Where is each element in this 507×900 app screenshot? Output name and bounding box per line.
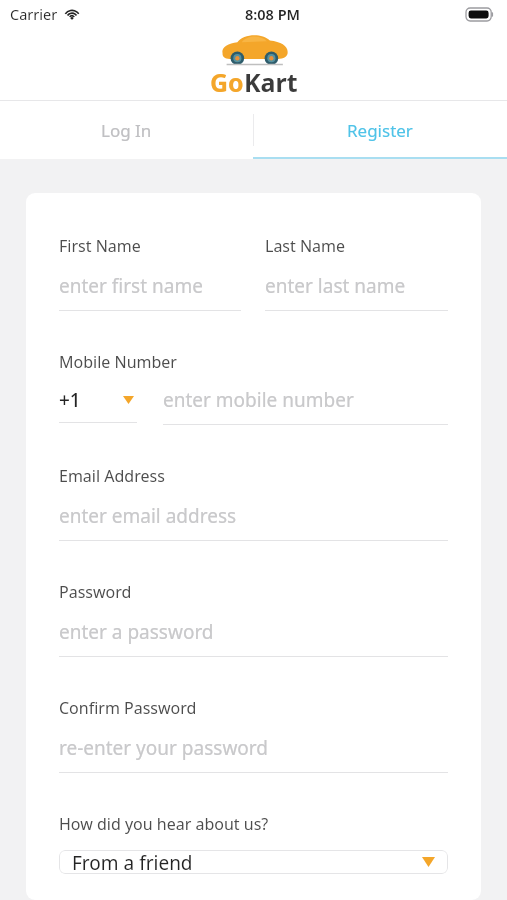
button[interactable]: Email Address [59,465,448,541]
staticText: enter last name [265,273,406,299]
staticText: Go [210,65,244,99]
staticText: +1 [59,387,81,413]
staticText: Password [59,581,132,603]
staticText: 8:08 PM [245,4,301,24]
staticText: Carrier [10,4,58,24]
staticText: enter email address [59,503,237,529]
button[interactable]: Confirm Password [59,697,448,773]
staticText: Log In [101,119,152,142]
staticText: enter first name [59,273,203,299]
staticText: How did you hear about us? [59,813,269,835]
staticText: enter a password [59,619,214,645]
staticText: Last Name [265,235,346,257]
button[interactable]: +1 [59,387,137,423]
button[interactable]: Log In [0,101,253,159]
staticText: Register [347,119,413,142]
staticText: re-enter your password [59,735,268,761]
button[interactable]: Register [253,101,507,159]
button[interactable]: Last Name [265,235,448,311]
button[interactable]: From a friend [59,850,448,874]
button[interactable]: enter mobile number [163,387,448,425]
staticText: First Name [59,235,141,257]
button[interactable]: Password [59,581,448,657]
staticText: From a friend [72,850,193,874]
button[interactable]: First Name [59,235,241,311]
staticText: Mobile Number [59,351,177,373]
staticText: Confirm Password [59,697,197,719]
staticText: Kart [244,65,298,99]
other: Select country code [123,396,134,404]
staticText: enter mobile number [163,387,354,413]
staticText: Email Address [59,465,165,487]
